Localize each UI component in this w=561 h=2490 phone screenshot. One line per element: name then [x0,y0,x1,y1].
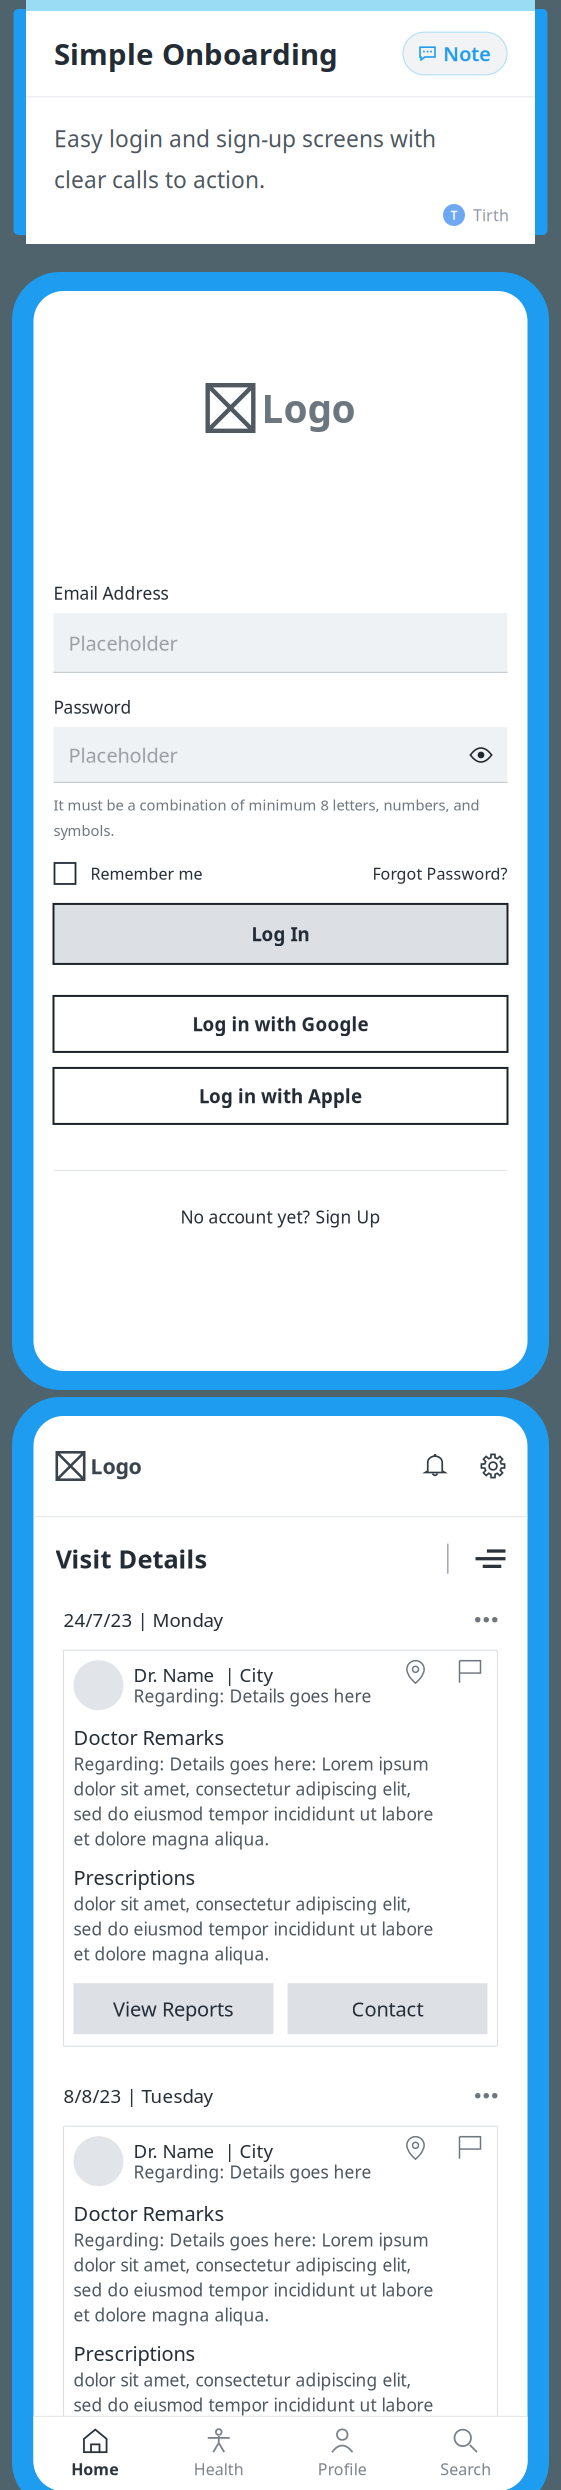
staticText: Log In [251,922,309,946]
staticText: Home [71,2458,119,2480]
staticText: Tirth [473,204,509,226]
button[interactable]: View Reports [73,2459,273,2490]
staticText: clear calls to action. [54,164,265,195]
staticText: 8/8/23 | Tuesday [63,2083,213,2108]
staticText: et dolore magna aliqua. [73,2418,269,2441]
staticText: View Reports [113,2471,234,2490]
staticText: dolor sit amet, consectetur adipiscing e… [73,1892,411,1915]
staticText: Forgot Password? [372,863,507,884]
staticText: sed do eiusmod tempor incididunt ut labo… [73,1917,433,1940]
staticText: It must be a combination of minimum 8 le… [53,795,479,814]
staticText: Dr. Name [133,2138,214,2163]
staticText: Email Address [53,581,168,604]
staticText: Regarding: Details goes here: Lorem ipsu… [73,2228,428,2251]
staticText: Note [443,40,491,67]
button[interactable]: Home [33,2417,157,2490]
staticText: Doctor Remarks [73,1724,224,1750]
staticText: dolor sit amet, consectetur adipiscing e… [73,2368,411,2391]
staticText: Logo [261,382,355,434]
button[interactable]: Filter and sort [475,1549,505,1568]
staticText: dolor sit amet, consectetur adipiscing e… [73,1777,411,1800]
staticText: Search [440,2458,491,2480]
staticText: Contact [351,1995,423,2022]
button[interactable]: No account yet? Sign Up [180,1205,380,1228]
button[interactable]: Search [404,2417,527,2490]
button[interactable]: View Reports [73,1983,273,2034]
staticText: No account yet? Sign Up [180,1205,380,1228]
staticText: symbols. [53,820,114,840]
staticText: Profile [318,2458,367,2480]
button[interactable]: Notifications [422,1453,447,1478]
button[interactable]: Health [157,2417,280,2490]
staticText: sed do eiusmod tempor incididunt ut labo… [73,2278,433,2301]
staticText: et dolore magna aliqua. [73,1942,269,1965]
staticText: | City [224,2138,273,2163]
staticText: Visit Details [55,1542,207,1575]
staticText: Prescriptions [73,2340,195,2366]
staticText: Contact [351,2471,423,2490]
staticText: Regarding: Details goes here [133,2160,371,2183]
button[interactable]: Log in with Google [53,996,507,1052]
staticText: Placeholder [68,742,177,768]
button[interactable]: Profile [280,2417,404,2490]
staticText: Easy login and sign-up screens with [54,123,436,153]
button[interactable]: More options [475,1617,497,1622]
staticText: dolor sit amet, consectetur adipiscing e… [73,2253,411,2276]
button[interactable]: Logo [55,1451,141,1481]
staticText: Prescriptions [73,1864,195,1890]
button[interactable]: Settings [480,1453,505,1478]
staticText: Health [194,2458,244,2480]
staticText: et dolore magna aliqua. [73,2303,269,2326]
button[interactable]: More options [475,2093,497,2098]
button[interactable]: Remember me [53,862,202,885]
staticText: Dr. Name [133,1662,214,1687]
staticText: sed do eiusmod tempor incididunt ut labo… [73,1802,433,1825]
staticText: View Reports [113,1995,234,2022]
button[interactable]: Contact [287,1983,487,2034]
staticText: Regarding: Details goes here: Lorem ipsu… [73,1752,428,1775]
staticText: Log in with Google [192,1012,368,1036]
button[interactable]: Forgot Password? [372,863,507,884]
staticText: Regarding: Details goes here [133,1684,371,1707]
staticText: Placeholder [68,630,177,656]
staticText: Remember me [90,863,202,884]
button[interactable]: Contact [287,2459,487,2490]
staticText: T [450,207,457,223]
button[interactable]: Note [403,32,507,75]
staticText: Logo [90,1452,141,1480]
staticText: 24/7/23 | Monday [63,1607,223,1632]
staticText: Doctor Remarks [73,2200,224,2226]
staticText: Simple Onboarding [54,34,338,73]
button[interactable]: Log in with Apple [53,1068,507,1124]
staticText: Password [53,695,131,718]
staticText: sed do eiusmod tempor incididunt ut labo… [73,2393,433,2416]
button[interactable]: Log In [53,904,507,964]
staticText: Log in with Apple [199,1084,362,1108]
staticText: | City [224,1662,273,1687]
staticText: et dolore magna aliqua. [73,1827,269,1850]
